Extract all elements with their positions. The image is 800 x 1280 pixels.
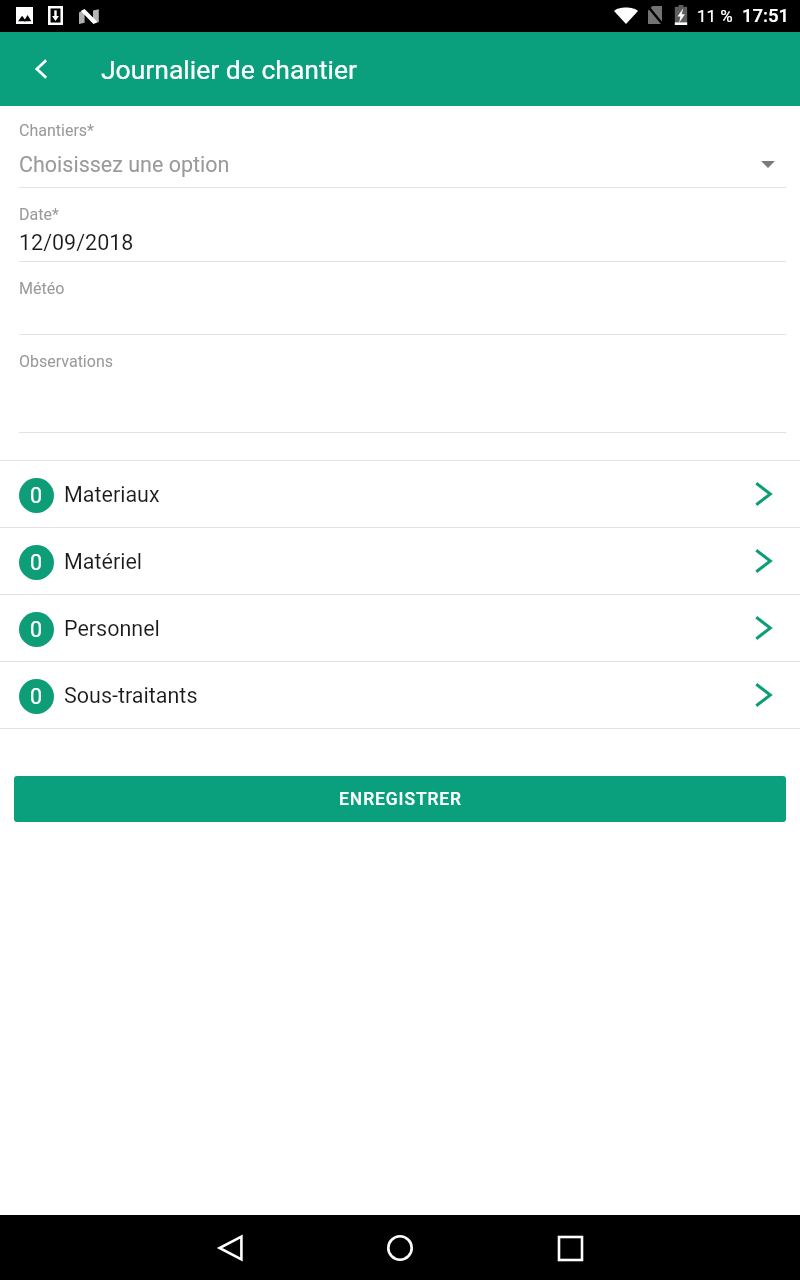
button[interactable]: Météo [0, 262, 800, 335]
button[interactable]: Recent apps [546, 1224, 594, 1272]
staticText: Chantiers* [19, 121, 94, 140]
button[interactable]: Date* [0, 188, 800, 262]
staticText: Journalier de chantier [101, 54, 358, 85]
staticText: Personnel [64, 616, 160, 641]
button[interactable]: Home [376, 1224, 424, 1272]
staticText: 0 [30, 617, 43, 642]
staticText: Date* [19, 205, 59, 224]
button[interactable]: Back [18, 45, 66, 93]
button[interactable]: 0 [0, 595, 800, 661]
button[interactable]: Observations [0, 335, 800, 433]
staticText: Sous-traitants [64, 683, 198, 708]
button[interactable]: Back [207, 1224, 255, 1272]
staticText: Choisissez une option [19, 152, 230, 177]
staticText: 0 [30, 684, 43, 709]
staticText: 0 [30, 550, 43, 575]
staticText: Matériel [64, 549, 143, 574]
staticText: 0 [30, 483, 43, 508]
staticText: Météo [19, 279, 65, 298]
button[interactable]: ENREGISTRER [14, 776, 786, 822]
button[interactable]: 0 [0, 528, 800, 594]
staticText: 17:51 [742, 5, 789, 27]
staticText: Materiaux [64, 482, 160, 507]
staticText: ENREGISTRER [339, 789, 462, 810]
staticText: Observations [19, 352, 113, 371]
button[interactable]: Chantiers* [0, 106, 800, 188]
staticText: 12/09/2018 [19, 230, 134, 255]
staticText: 11 % [697, 6, 733, 26]
button[interactable]: 0 [0, 461, 800, 527]
button[interactable]: 0 [0, 662, 800, 728]
